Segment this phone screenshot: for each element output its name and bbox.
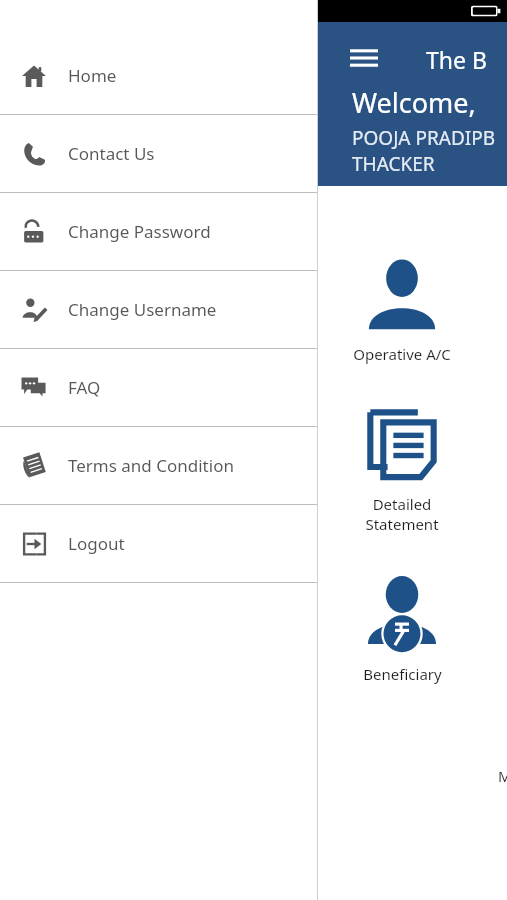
staticText: POOJA PRADIPB xyxy=(352,125,496,151)
button[interactable]: Change Username xyxy=(0,271,318,348)
staticText: Contact Us xyxy=(68,142,155,165)
button[interactable]: Terms and Condition xyxy=(0,427,318,504)
button[interactable]: Operative A/C xyxy=(318,248,486,374)
staticText: Change Username xyxy=(68,298,217,321)
button[interactable]: FAQ xyxy=(0,349,318,426)
staticText: M xyxy=(498,766,507,786)
button[interactable]: Contact Us xyxy=(0,115,318,192)
button[interactable]: Logout xyxy=(0,505,318,582)
staticText: Beneficiary xyxy=(363,664,442,684)
staticText: Change Password xyxy=(68,220,211,243)
staticText: The B xyxy=(426,44,487,75)
staticText: Logout xyxy=(68,532,125,555)
staticText: Terms and Condition xyxy=(68,454,234,477)
staticText: Detailed Statement xyxy=(365,494,439,534)
staticText: Home xyxy=(68,64,117,87)
staticText: FAQ xyxy=(68,376,101,399)
staticText: THACKER xyxy=(352,151,435,177)
staticText: Welcome, xyxy=(352,84,476,121)
button[interactable]: Home xyxy=(0,37,318,114)
button[interactable]: Detailed Statement xyxy=(318,398,486,544)
button[interactable]: Open navigation menu xyxy=(342,36,386,80)
staticText: Operative A/C xyxy=(353,344,451,364)
button[interactable]: Change Password xyxy=(0,193,318,270)
button[interactable]: Beneficiary xyxy=(318,566,486,694)
